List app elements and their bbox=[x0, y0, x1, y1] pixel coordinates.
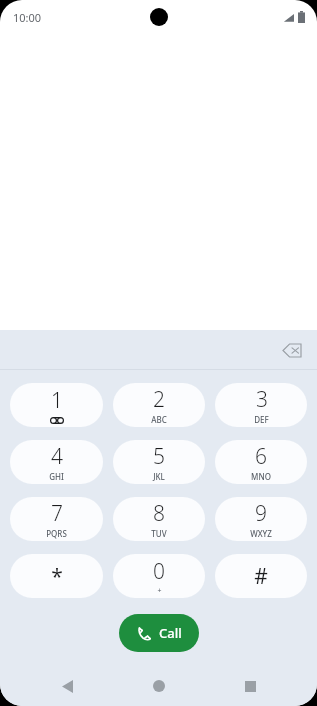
staticText: WXYZ bbox=[250, 528, 272, 539]
staticText: PQRS bbox=[46, 528, 67, 539]
staticText: + bbox=[157, 586, 162, 596]
button[interactable]: 3 bbox=[215, 383, 307, 427]
staticText: TUV bbox=[151, 528, 167, 539]
button[interactable]: 8 bbox=[113, 497, 205, 541]
staticText: ABC bbox=[151, 414, 167, 425]
button[interactable]: Home bbox=[135, 666, 183, 706]
button[interactable]: Back bbox=[43, 666, 91, 706]
staticText: 2 bbox=[153, 385, 165, 414]
staticText: 7 bbox=[51, 499, 63, 528]
staticText: DEF bbox=[254, 414, 269, 425]
staticText: 9 bbox=[255, 499, 267, 528]
button[interactable]: * bbox=[10, 554, 103, 598]
staticText: 4 bbox=[51, 442, 63, 471]
button[interactable]: Call bbox=[119, 614, 199, 652]
staticText: JKL bbox=[153, 471, 165, 482]
staticText: 1 bbox=[51, 386, 63, 415]
staticText: 5 bbox=[153, 442, 165, 471]
button[interactable]: 1 bbox=[10, 383, 103, 427]
staticText: Call bbox=[159, 624, 182, 642]
staticText: 6 bbox=[255, 442, 267, 471]
staticText: MNO bbox=[251, 471, 271, 482]
button[interactable]: Recent apps bbox=[226, 666, 274, 706]
button[interactable]: # bbox=[215, 554, 307, 598]
staticText: 10:00 bbox=[13, 10, 42, 25]
button[interactable]: 4 bbox=[10, 440, 103, 484]
button[interactable]: 0 bbox=[113, 554, 205, 598]
staticText: 8 bbox=[153, 499, 165, 528]
button[interactable]: 7 bbox=[10, 497, 103, 541]
staticText: GHI bbox=[49, 471, 64, 482]
staticText: 3 bbox=[256, 385, 268, 414]
staticText: * bbox=[51, 562, 63, 591]
button[interactable]: 6 bbox=[215, 440, 307, 484]
button[interactable]: 5 bbox=[113, 440, 205, 484]
button[interactable]: 9 bbox=[215, 497, 307, 541]
staticText: # bbox=[254, 562, 268, 591]
button[interactable]: 2 bbox=[113, 383, 205, 427]
staticText: 0 bbox=[153, 557, 165, 586]
button[interactable]: Backspace bbox=[275, 333, 309, 367]
